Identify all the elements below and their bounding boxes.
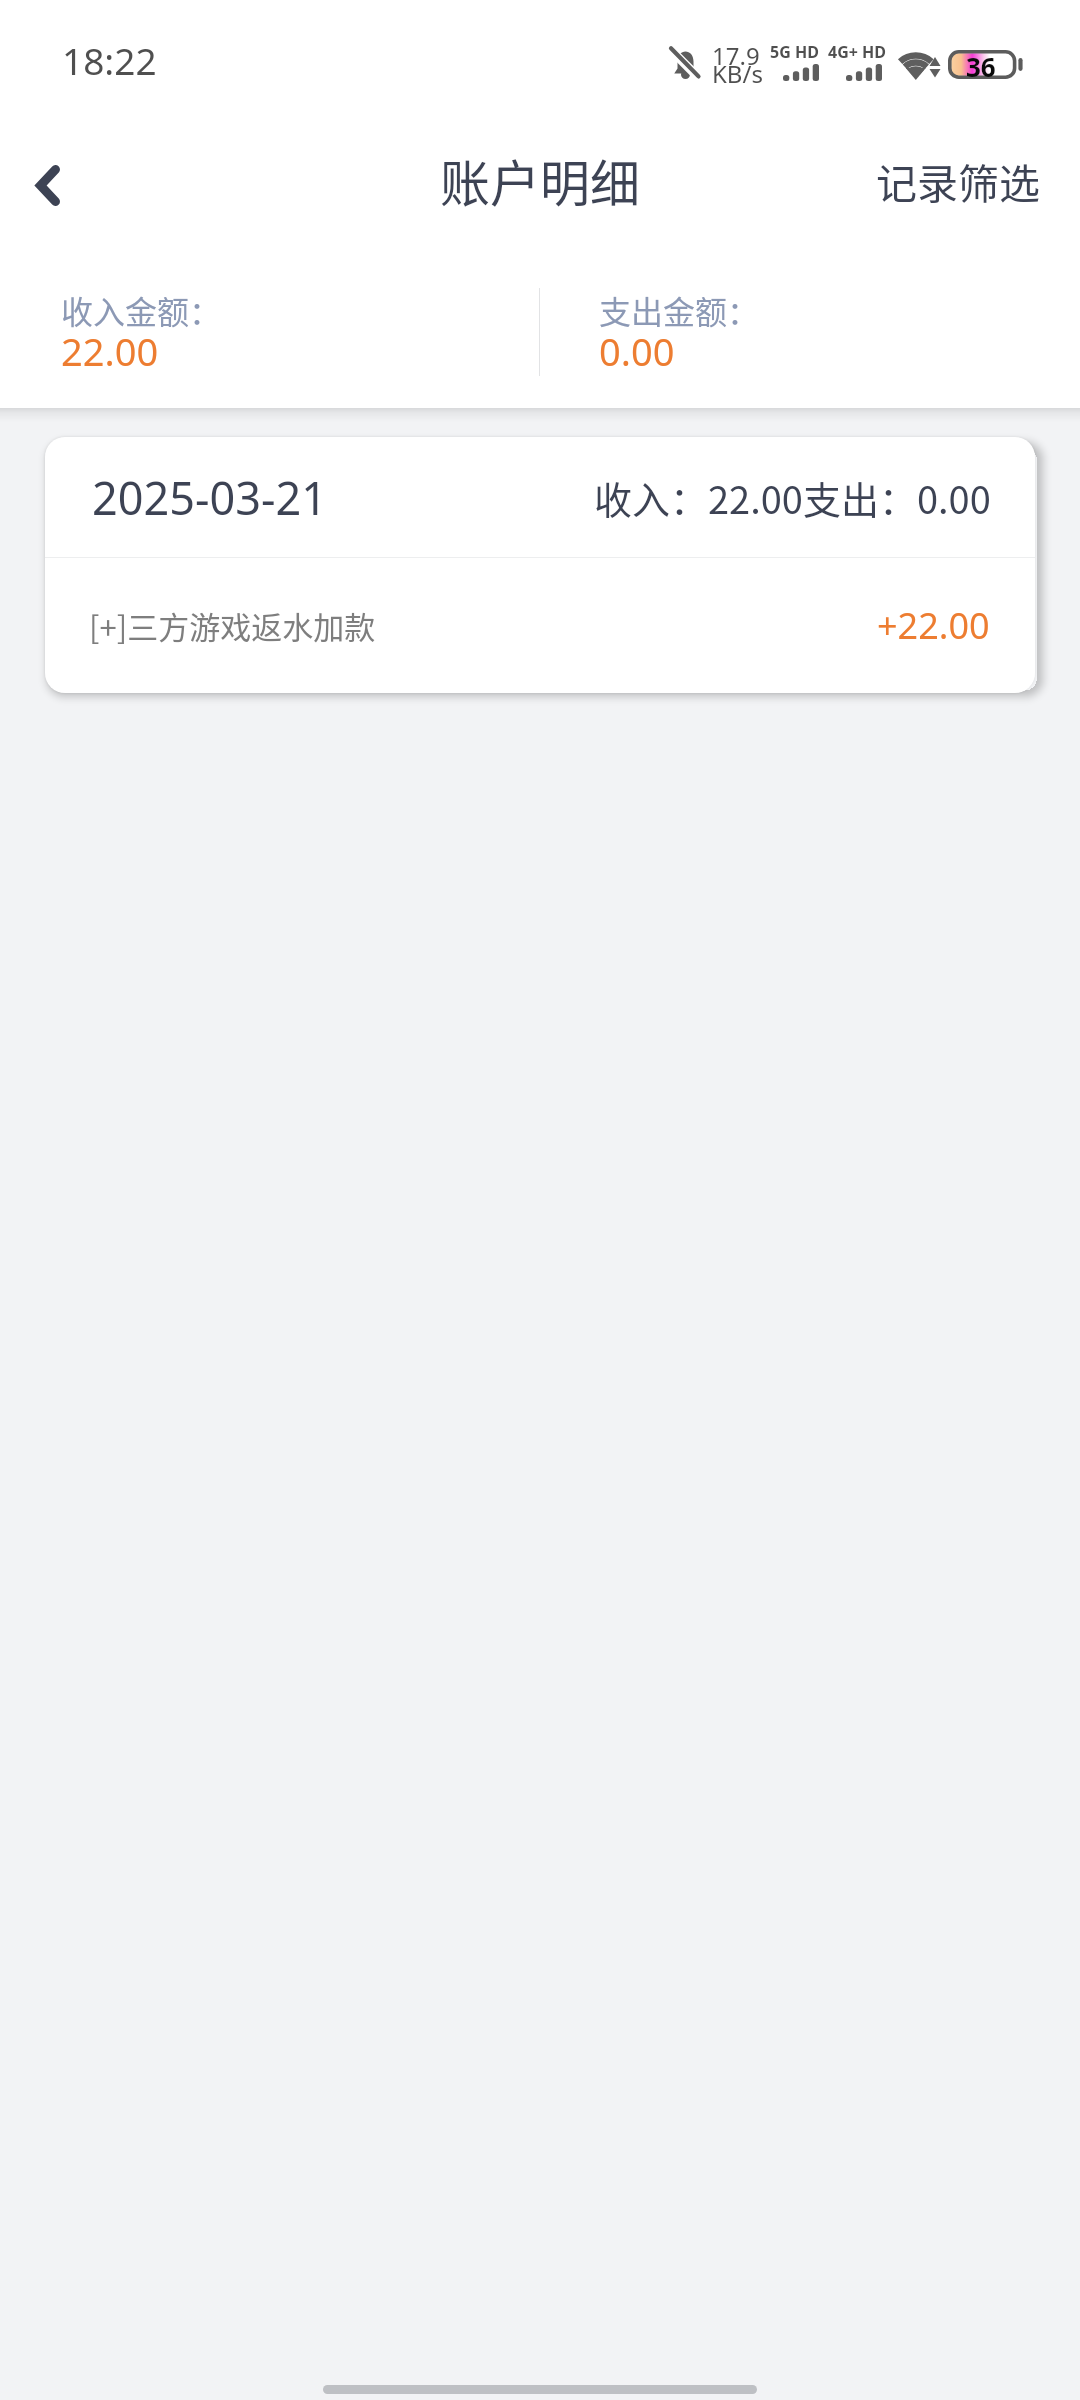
staticText: 36: [966, 49, 996, 78]
staticText: 记录筛选: [876, 151, 1040, 210]
staticText: 18:22: [62, 35, 157, 85]
button[interactable]: 2025-03-21: [45, 437, 1035, 557]
staticText: 收入：22.00支出：0.00: [594, 470, 991, 525]
staticText: 0.00: [599, 325, 675, 377]
button[interactable]: 记录筛选: [876, 126, 1040, 256]
staticText: 支出金额：: [599, 287, 760, 333]
staticText: 收入金额：: [61, 287, 222, 333]
staticText: KB/s: [712, 57, 763, 90]
staticText: 17.9: [712, 39, 760, 72]
staticText: [+]三方游戏返水加款: [89, 603, 376, 648]
staticText: 账户明细: [440, 144, 640, 216]
staticText: 2025-03-21: [92, 467, 327, 528]
staticText: 5G HD: [770, 41, 819, 63]
staticText: 22.00: [61, 325, 159, 377]
button[interactable]: Back: [0, 126, 96, 256]
staticText: 4G+ HD: [828, 41, 887, 63]
staticText: +22.00: [877, 601, 990, 650]
button[interactable]: [+]三方游戏返水加款: [45, 558, 1035, 693]
